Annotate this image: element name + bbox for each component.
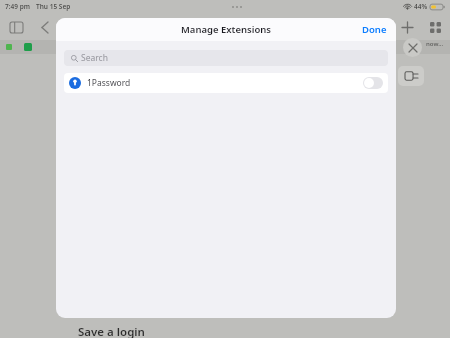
button[interactable]: 1Password xyxy=(64,73,388,93)
button[interactable]: Extensions xyxy=(398,66,424,86)
button[interactable]: Done xyxy=(362,23,387,36)
staticText: Search xyxy=(81,52,108,64)
button[interactable]: Enable 1Password xyxy=(363,77,383,89)
button[interactable]: Share xyxy=(372,20,386,34)
staticText: 7:49 pm xyxy=(5,2,30,11)
staticText: 44% xyxy=(414,2,428,11)
staticText: now... xyxy=(426,40,444,48)
staticText: 1Password xyxy=(87,77,131,89)
staticText: Manage Extensions xyxy=(181,23,272,36)
button[interactable]: Search xyxy=(64,50,388,66)
staticText: Done xyxy=(362,23,387,36)
staticText: Save a login xyxy=(78,324,145,338)
button[interactable]: New Tab xyxy=(400,20,414,34)
button[interactable]: Close xyxy=(403,38,422,57)
button[interactable]: Sidebar xyxy=(8,19,24,35)
staticText: Thu 15 Sep xyxy=(36,2,71,11)
button[interactable]: Back xyxy=(38,20,52,34)
button[interactable]: Show Tabs xyxy=(428,20,442,34)
